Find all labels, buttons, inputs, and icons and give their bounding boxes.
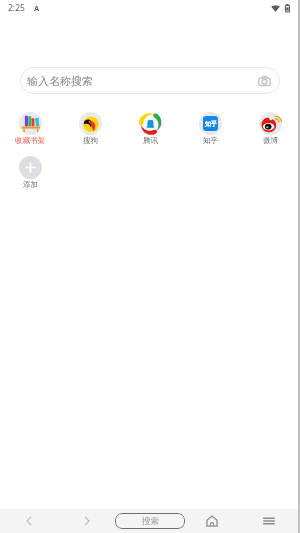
staticText: 腾讯 — [143, 136, 158, 145]
button[interactable]: 收藏书架 — [0, 112, 60, 145]
button[interactable]: 添加 — [0, 156, 60, 189]
button[interactable]: Forward — [74, 509, 100, 533]
staticText: 知乎 — [205, 120, 217, 128]
staticText: 微博 — [263, 136, 278, 145]
button[interactable]: 搜索 — [115, 513, 185, 529]
staticText: 2:25 — [8, 2, 25, 14]
button[interactable]: Home — [199, 509, 225, 533]
button[interactable]: 输入名称搜索 — [20, 67, 280, 94]
staticText: 搜狗 — [83, 136, 98, 145]
button[interactable]: 知乎 — [180, 112, 240, 145]
staticText: 输入名称搜索 — [27, 74, 93, 88]
button[interactable]: Back — [16, 509, 41, 533]
staticText: 添加 — [23, 180, 38, 189]
other: Search by image — [258, 76, 271, 86]
button[interactable]: 腾讯 — [120, 112, 180, 145]
staticText: 收藏书架 — [15, 136, 45, 145]
button[interactable]: Menu — [256, 509, 282, 533]
button[interactable]: 搜狗 — [60, 112, 120, 145]
button[interactable]: 微博 — [240, 112, 300, 145]
staticText: A — [34, 3, 40, 13]
staticText: 搜索 — [142, 516, 159, 527]
staticText: 知乎 — [203, 136, 218, 145]
